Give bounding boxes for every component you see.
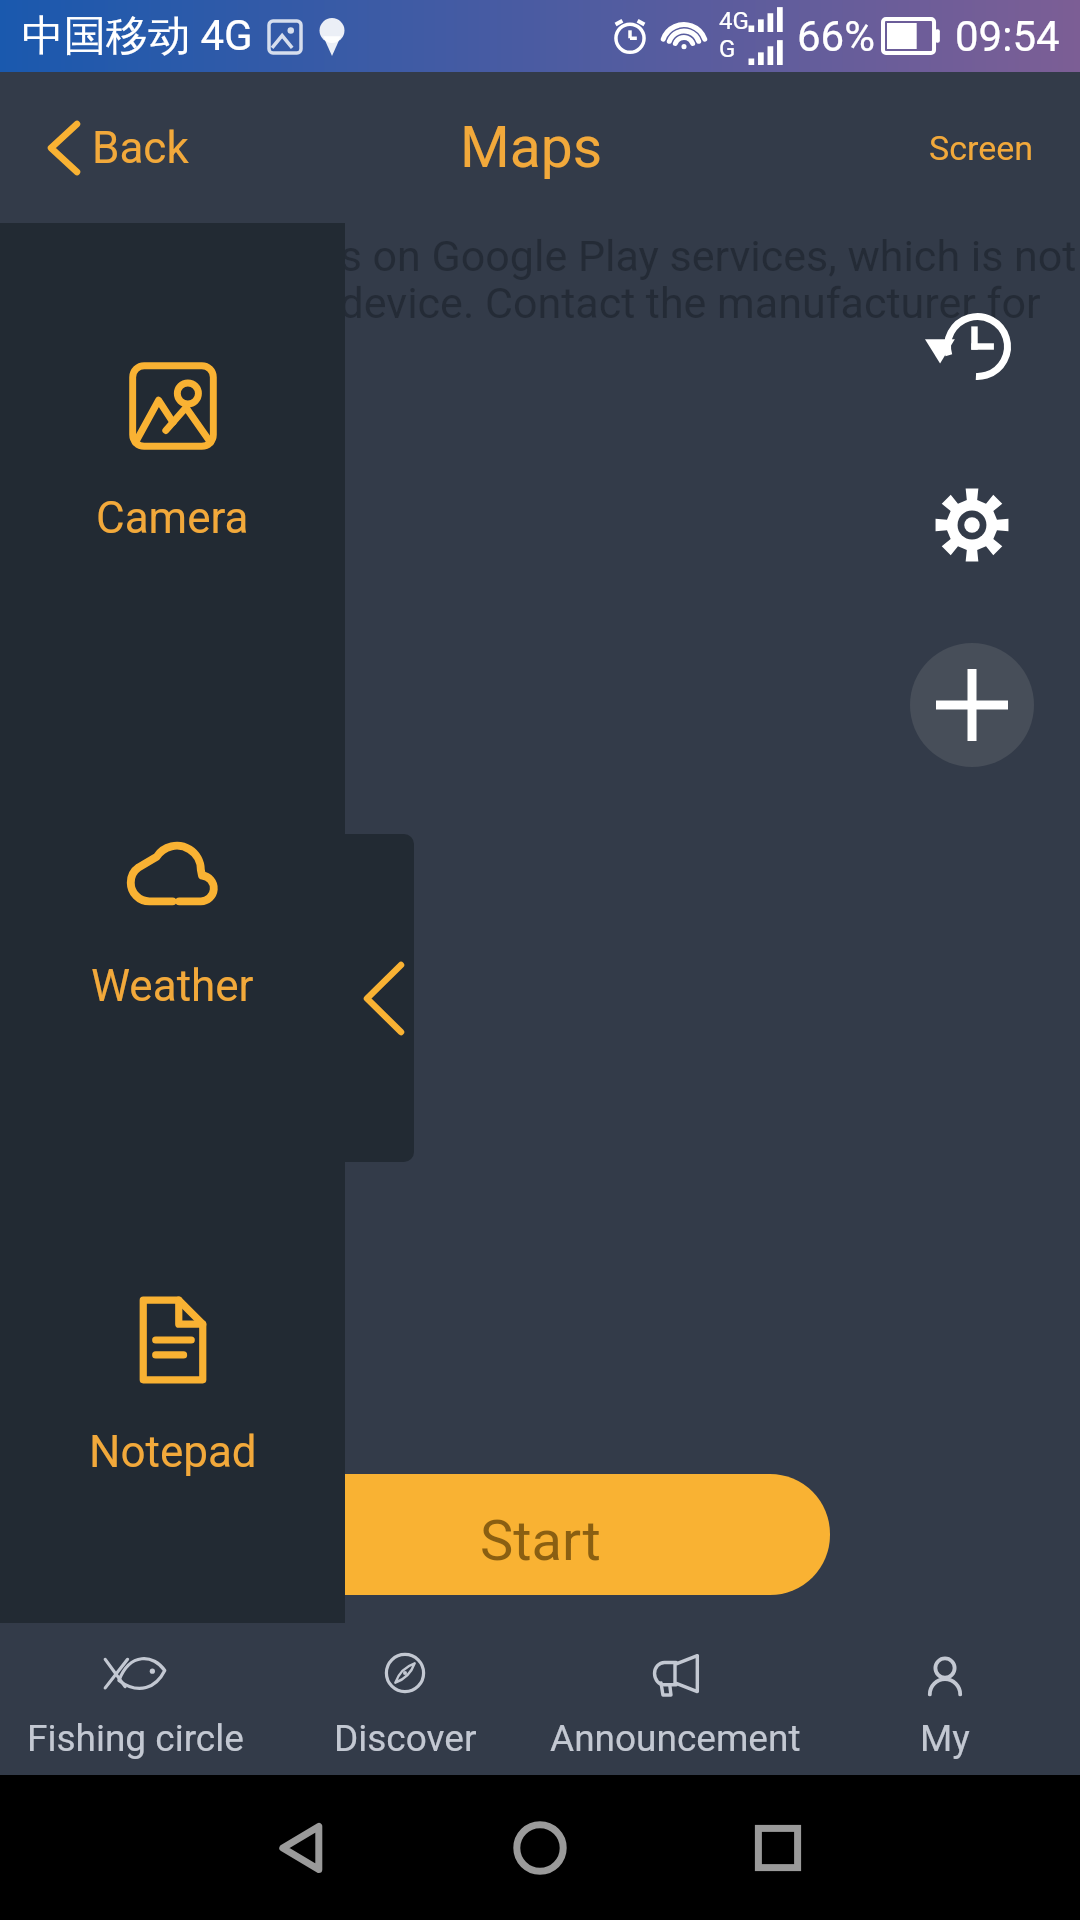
button[interactable]: Screen (889, 88, 1080, 208)
button[interactable]: Start (250, 1474, 830, 1595)
button[interactable]: Collapse panel (341, 834, 414, 1162)
staticText: My (920, 1717, 970, 1760)
button[interactable]: Weather (0, 826, 345, 1012)
staticText: Notepad (89, 1426, 257, 1478)
button[interactable]: Recents (738, 1808, 818, 1888)
button[interactable]: Back (0, 87, 229, 209)
button[interactable]: Settings (910, 463, 1034, 587)
staticText: Back (92, 122, 189, 174)
staticText: 66% (797, 12, 875, 61)
button[interactable]: Notepad (0, 1292, 345, 1478)
staticText: 09:54 (955, 12, 1060, 61)
button[interactable]: Add (910, 643, 1034, 767)
staticText: supported by your device. Contact the ma… (0, 278, 1041, 328)
button[interactable]: Back (262, 1808, 342, 1888)
staticText: Camera (96, 492, 249, 544)
staticText: Discover (334, 1717, 477, 1760)
staticText: This app relies on Google Play services,… (84, 231, 1077, 281)
button[interactable]: Announcement (540, 1623, 810, 1775)
staticText: 4G (719, 7, 749, 35)
staticText: Weather (91, 960, 254, 1012)
button[interactable]: History (906, 284, 1030, 408)
staticText: Fishing circle (27, 1717, 244, 1760)
staticText: Screen (929, 128, 1034, 168)
button[interactable]: Home (500, 1808, 580, 1888)
staticText: G (719, 35, 736, 63)
staticText: Maps (460, 114, 603, 181)
staticText: Announcement (550, 1717, 801, 1760)
button[interactable]: Camera (0, 358, 345, 544)
button[interactable]: Fishing circle (0, 1623, 270, 1775)
staticText: 中国移动 4G (22, 10, 253, 63)
button[interactable]: My (810, 1623, 1080, 1775)
staticText: Start (480, 1508, 601, 1574)
button[interactable]: Discover (270, 1623, 540, 1775)
